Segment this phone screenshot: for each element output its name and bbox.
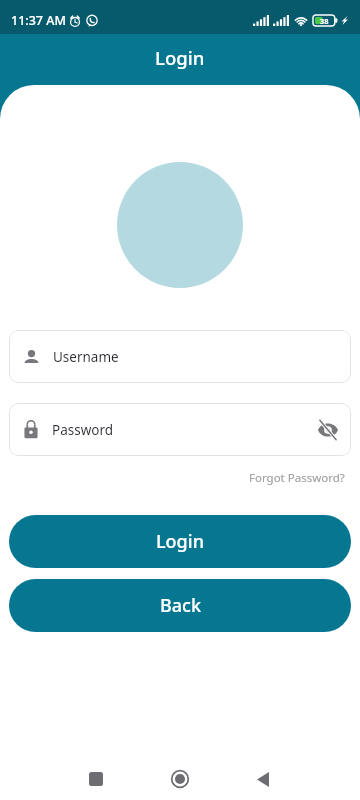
- button[interactable]: Back: [9, 579, 351, 632]
- button[interactable]: Password: [9, 403, 351, 456]
- button[interactable]: Forgot Password?: [247, 468, 347, 488]
- staticText: Login: [155, 45, 205, 70]
- other: Show password: [317, 419, 339, 441]
- button[interactable]: Back: [241, 757, 285, 800]
- staticText: 38: [320, 16, 329, 26]
- button[interactable]: Recent apps: [74, 757, 118, 800]
- staticText: 11:37 AM: [11, 12, 66, 29]
- button[interactable]: Profile photo: [117, 162, 243, 288]
- button[interactable]: Login: [9, 515, 351, 568]
- staticText: Back: [160, 593, 201, 618]
- staticText: Login: [156, 529, 204, 554]
- staticText: Forgot Password?: [249, 470, 345, 486]
- button[interactable]: Home: [158, 757, 202, 800]
- staticText: Username: [53, 348, 119, 366]
- button[interactable]: Username: [9, 330, 351, 383]
- staticText: Password: [52, 421, 114, 439]
